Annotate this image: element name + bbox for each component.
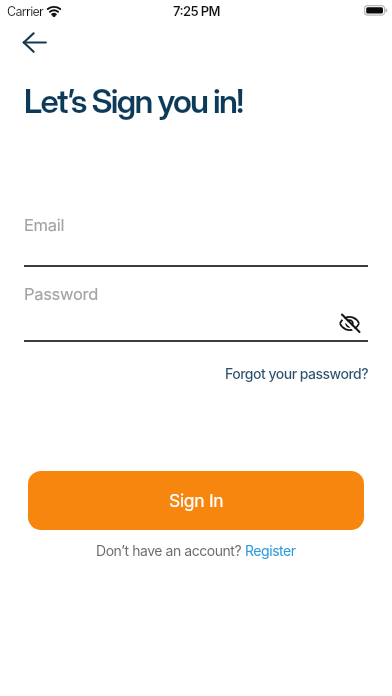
staticText: Email xyxy=(24,215,65,235)
staticText: Don’t have an account? xyxy=(96,542,245,559)
staticText: Sign In xyxy=(169,490,224,511)
staticText: Register xyxy=(245,542,296,559)
staticText: 7:25 PM xyxy=(173,3,220,19)
staticText: Carrier xyxy=(7,4,44,19)
staticText: Password xyxy=(24,284,98,304)
staticText: Forgot your password? xyxy=(225,365,369,382)
staticText: Let’s Sign you in! xyxy=(24,81,243,121)
